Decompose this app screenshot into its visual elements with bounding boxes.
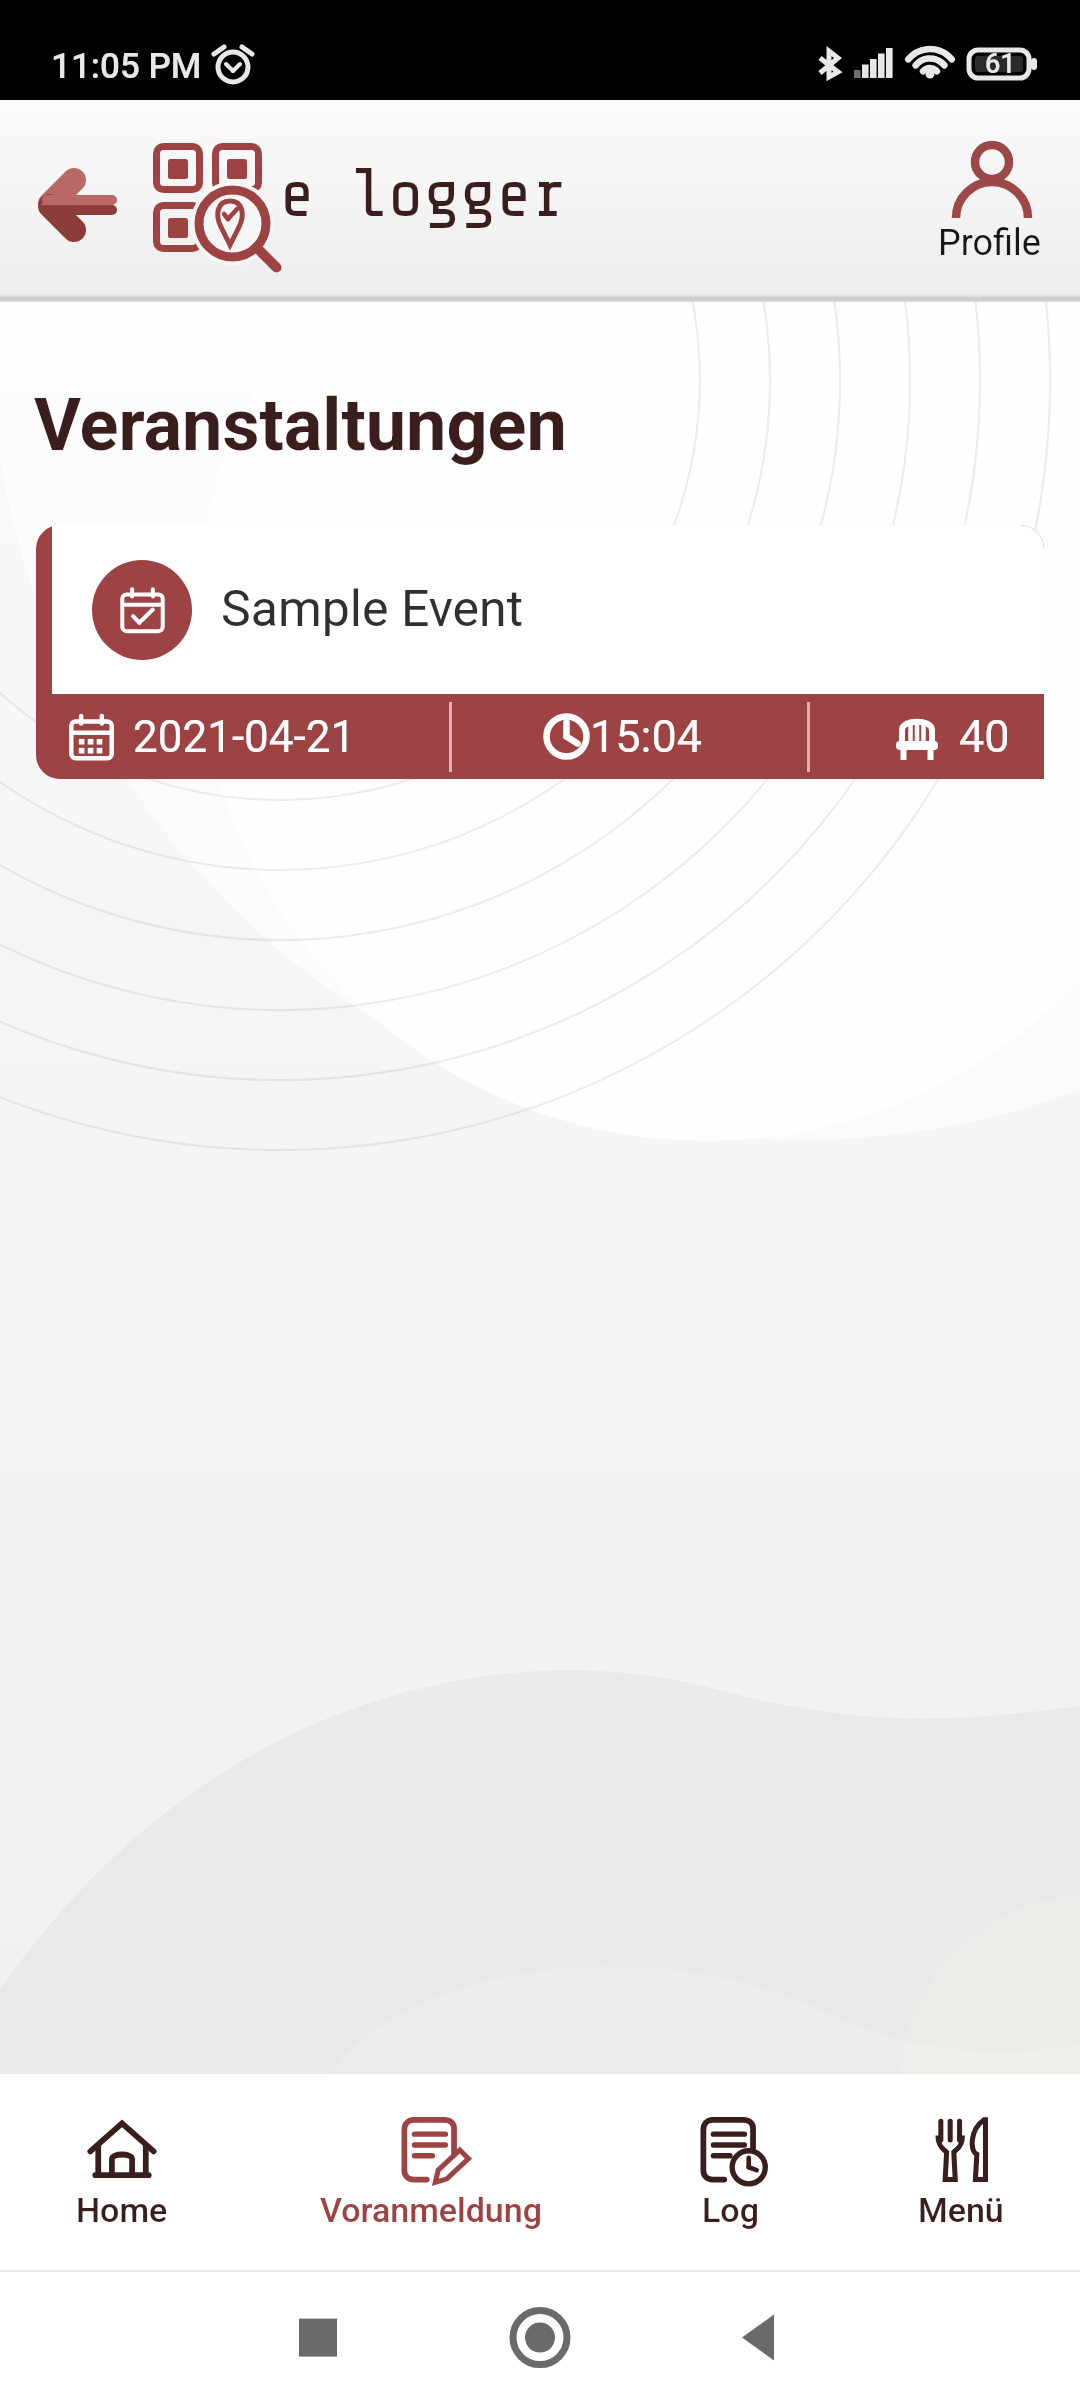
button[interactable]: Menü (918, 2114, 1004, 2230)
staticText: Log (702, 2190, 759, 2230)
button[interactable]: Home (76, 2114, 168, 2230)
staticText: Menü (918, 2190, 1004, 2230)
button[interactable]: Log (694, 2114, 766, 2230)
button[interactable]: Voranmeldung (320, 2114, 542, 2230)
button[interactable]: Back (29, 169, 123, 241)
staticText: 61 (985, 48, 1016, 80)
staticText: Profile (938, 222, 1041, 264)
staticText: Home (76, 2190, 168, 2230)
button[interactable]: Sample Event (36, 525, 1044, 779)
staticText: Veranstaltungen (34, 383, 567, 467)
button[interactable]: Profile (928, 134, 1051, 268)
staticText: Sample Event (221, 580, 524, 639)
staticText: 15:04 (590, 710, 703, 763)
staticText: e logger (279, 157, 569, 233)
staticText: 11:05 PM (51, 46, 202, 87)
staticText: Voranmeldung (320, 2190, 542, 2230)
staticText: 2021-04-21 (133, 711, 356, 763)
staticText: 40 (959, 710, 1010, 763)
